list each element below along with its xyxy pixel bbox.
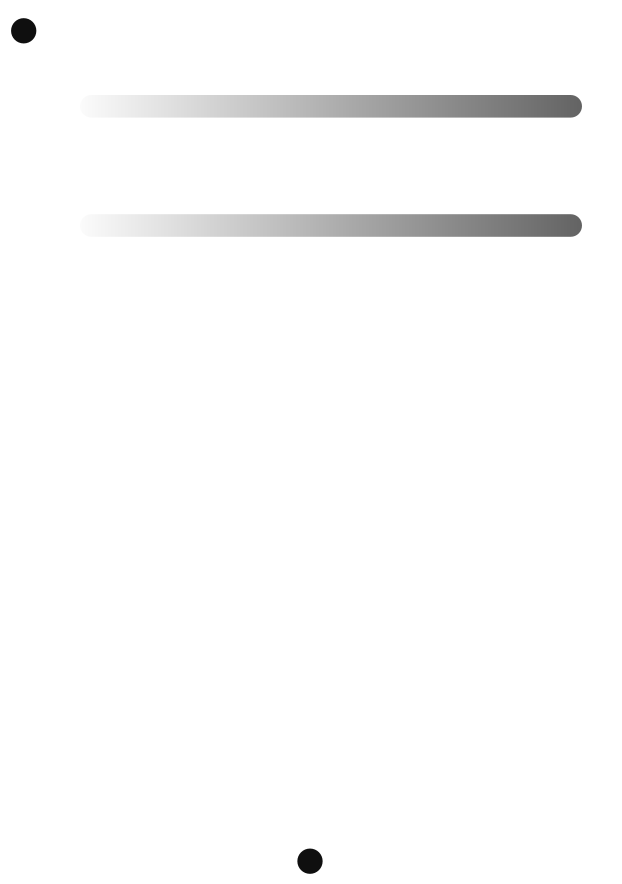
button[interactable]: Profile: [11, 18, 36, 43]
button[interactable]: Home: [297, 849, 323, 874]
